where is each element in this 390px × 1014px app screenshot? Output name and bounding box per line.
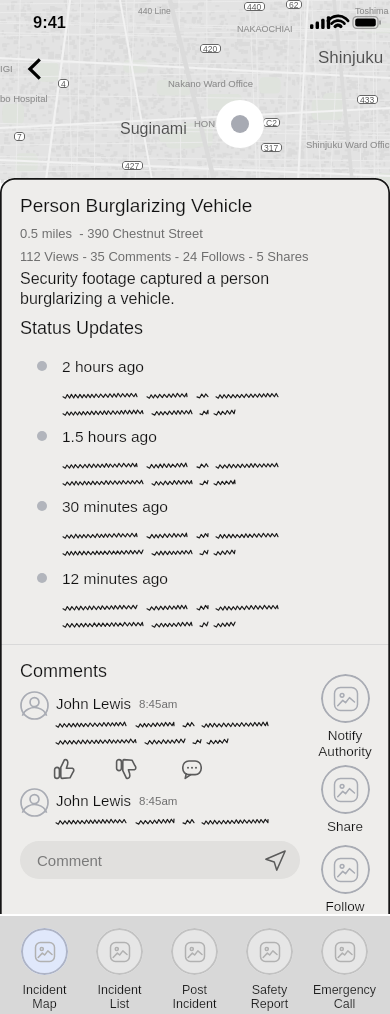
staticText: Shinjuku Ward Offic (306, 139, 390, 150)
button[interactable]: Incident (82, 916, 157, 1011)
staticText: Toshima (355, 6, 389, 16)
button[interactable]: Share (302, 765, 388, 834)
staticText: 0.5 miles - 390 Chestnut Street (20, 226, 203, 241)
staticText: Comment (37, 852, 103, 869)
staticText: Security footage captured a person burgl… (20, 270, 270, 307)
staticText: Notify Authority (302, 728, 388, 759)
staticText: Safety (232, 983, 307, 997)
staticText: 9:41 (33, 13, 67, 31)
staticText: 420 (203, 44, 218, 53)
button[interactable]: Incident (7, 916, 82, 1011)
button[interactable]: Post (157, 916, 232, 1011)
button[interactable]: Reply (182, 759, 202, 779)
button[interactable]: Back (20, 54, 50, 84)
staticText: Suginami (120, 120, 187, 138)
staticText: Map (7, 997, 82, 1011)
staticText: bo Hospital (0, 93, 48, 104)
button[interactable]: Notify Authority (302, 674, 388, 759)
staticText: 62 (289, 0, 299, 9)
staticText: Shinjuku (318, 48, 384, 67)
button[interactable]: Comment (20, 841, 300, 879)
staticText: Incident (157, 997, 232, 1011)
button[interactable]: Emergency (307, 916, 382, 1011)
staticText: Call (307, 997, 382, 1011)
staticText: 433 (360, 95, 375, 104)
staticText: Incident (82, 983, 157, 997)
staticText: 2 hours ago (62, 358, 144, 375)
staticText: Post (157, 983, 232, 997)
staticText: John Lewis (56, 695, 132, 712)
staticText: HON (194, 118, 216, 129)
button[interactable]: Safety (232, 916, 307, 1011)
staticText: John Lewis (56, 792, 132, 809)
staticText: Emergency (307, 983, 382, 997)
staticText: Person Burglarizing Vehicle (20, 195, 253, 216)
staticText: 8:45am (139, 698, 178, 711)
staticText: 440 Line (138, 6, 171, 15)
staticText: 30 minutes ago (62, 498, 168, 515)
staticText: Report (232, 997, 307, 1011)
staticText: List (82, 997, 157, 1011)
staticText: 12 minutes ago (62, 570, 168, 587)
staticText: 8:45am (139, 795, 178, 808)
staticText: 440 (247, 2, 262, 11)
button[interactable]: Follow (302, 845, 388, 914)
staticText: Comments (20, 661, 108, 681)
staticText: 317 (264, 143, 279, 152)
button[interactable]: Dislike (116, 759, 136, 779)
staticText: Nakano Ward Office (168, 78, 254, 89)
staticText: C2 (266, 118, 277, 127)
staticText: Status Updates (20, 318, 144, 338)
staticText: 7 (17, 132, 22, 141)
staticText: 112 Views - 35 Comments - 24 Follows - 5… (20, 249, 309, 264)
staticText: Incident (7, 983, 82, 997)
staticText: IGI (0, 63, 13, 74)
button[interactable]: Like (54, 759, 74, 779)
staticText: 1.5 hours ago (62, 428, 157, 445)
staticText: 427 (125, 161, 140, 170)
staticText: Follow (302, 899, 388, 914)
staticText: NAKAOCHIAI (237, 24, 293, 34)
staticText: Share (302, 819, 388, 834)
staticText: 4 (61, 79, 66, 88)
